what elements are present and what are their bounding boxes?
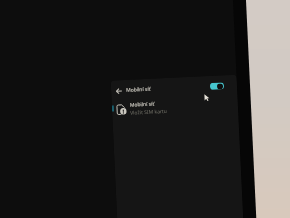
button[interactable]: Mobile data toggle (210, 82, 224, 90)
staticText: Mobilní síť (126, 86, 151, 94)
button[interactable]: Back (112, 84, 125, 97)
button[interactable]: Mobilní síť (112, 95, 238, 118)
staticText: Mobilní síť (130, 100, 155, 109)
staticText: Vložit SIM kartu (130, 108, 167, 117)
